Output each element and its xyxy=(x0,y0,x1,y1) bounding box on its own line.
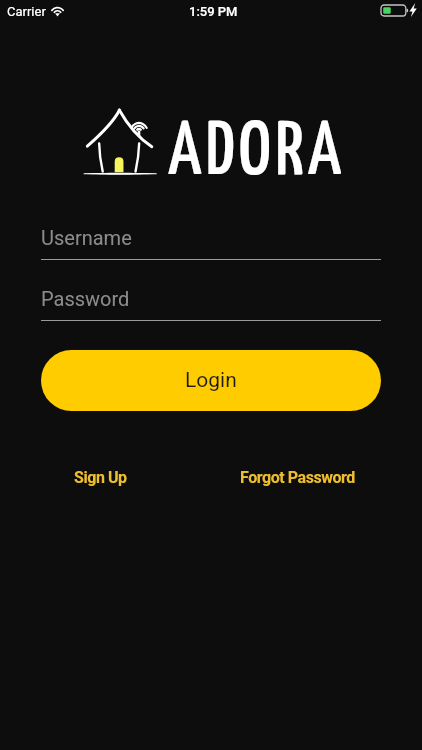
other: Battery charging xyxy=(381,5,408,16)
staticText: 1:59 PM xyxy=(189,4,238,19)
button[interactable]: Sign Up xyxy=(61,464,139,490)
button[interactable]: Login xyxy=(41,350,381,411)
button[interactable]: Password xyxy=(41,287,381,321)
other: Charging xyxy=(409,3,417,17)
staticText: Carrier xyxy=(7,4,46,19)
staticText: Login xyxy=(185,368,237,393)
button[interactable]: Username xyxy=(41,226,381,260)
staticText: Sign Up xyxy=(74,468,127,487)
staticText: Username xyxy=(41,226,132,249)
button[interactable]: Forgot Password xyxy=(229,464,365,490)
other: Wi-Fi signal xyxy=(50,4,65,16)
staticText: Forgot Password xyxy=(240,468,355,487)
staticText: Password xyxy=(41,287,130,310)
staticText: ADORA xyxy=(168,117,346,189)
